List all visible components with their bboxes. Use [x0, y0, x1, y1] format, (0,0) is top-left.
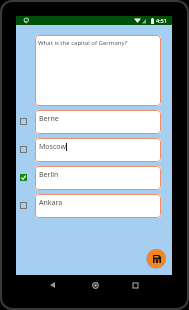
- button[interactable]: Berne: [16, 108, 172, 136]
- staticText: Berne: [39, 114, 59, 124]
- staticText: Moscow: [39, 142, 66, 152]
- staticText: Ankara: [39, 198, 63, 208]
- staticText: 4:51: [156, 17, 167, 24]
- button[interactable]: Home: [86, 278, 104, 292]
- button[interactable]: Back: [43, 278, 61, 292]
- staticText: Berlin: [39, 170, 59, 180]
- button[interactable]: Save: [147, 249, 166, 268]
- button[interactable]: Recent apps: [126, 278, 144, 292]
- staticText: What is the capital of Germany?: [38, 39, 128, 47]
- button[interactable]: Moscow: [16, 136, 172, 164]
- button[interactable]: Ankara: [16, 192, 172, 220]
- button[interactable]: Berlin: [16, 164, 172, 192]
